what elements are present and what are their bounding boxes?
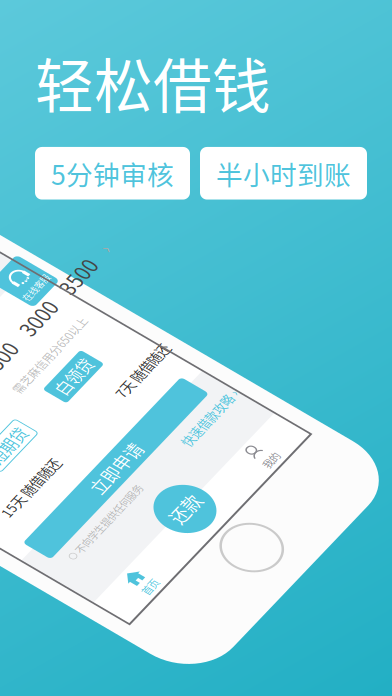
staticText: 半小时到账	[216, 154, 351, 193]
staticText: 轻松借钱	[35, 40, 271, 125]
staticText: 5分钟审核	[51, 154, 174, 193]
